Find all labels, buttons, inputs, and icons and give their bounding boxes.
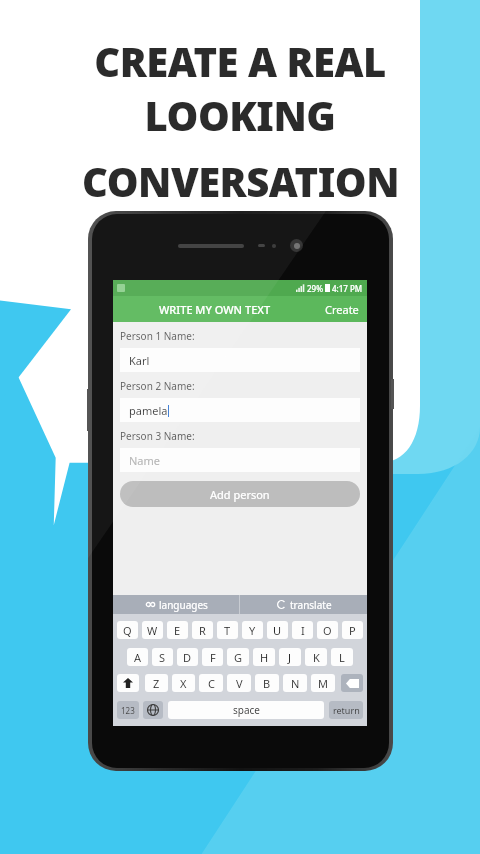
staticText: 123 — [121, 705, 135, 716]
button[interactable]: G — [227, 648, 249, 666]
staticText: I — [301, 623, 305, 638]
button[interactable]: B — [255, 674, 279, 692]
staticText: pamela — [129, 403, 168, 418]
button[interactable]: J — [279, 648, 301, 666]
button[interactable]: K — [305, 648, 327, 666]
staticText: WRITE MY OWN TEXT — [159, 302, 271, 317]
button[interactable]: Z — [145, 674, 168, 692]
button[interactable]: Change language — [143, 701, 163, 719]
staticText: Z — [153, 676, 160, 691]
staticText: Name — [129, 453, 161, 468]
button[interactable]: M — [311, 674, 335, 692]
button[interactable]: translate — [240, 595, 367, 614]
staticText: CREATE A REAL LOOKING — [12, 34, 468, 142]
button[interactable]: Shift — [117, 674, 139, 692]
button[interactable]: space — [168, 701, 324, 719]
button[interactable]: Add person — [120, 481, 360, 507]
button[interactable]: U — [267, 621, 288, 639]
staticText: return — [333, 704, 360, 716]
button[interactable]: Q — [117, 621, 138, 639]
staticText: CONVERSATION — [82, 154, 399, 208]
button[interactable]: Create — [317, 302, 367, 317]
button[interactable]: X — [172, 674, 195, 692]
staticText: K — [313, 650, 320, 665]
staticText: 29% — [307, 283, 323, 294]
button[interactable]: Name — [120, 448, 360, 472]
staticText: S — [159, 650, 166, 665]
button[interactable]: P — [342, 621, 363, 639]
staticText: F — [210, 650, 216, 665]
staticText: P — [349, 623, 356, 638]
button[interactable]: F — [202, 648, 223, 666]
staticText: 4:17 PM — [332, 283, 363, 294]
button[interactable]: S — [152, 648, 173, 666]
staticText: M — [318, 676, 328, 691]
staticText: T — [224, 623, 231, 638]
button[interactable]: D — [177, 648, 198, 666]
button[interactable]: C — [199, 674, 223, 692]
staticText: B — [263, 676, 271, 691]
staticText: W — [147, 623, 158, 638]
staticText: L — [339, 650, 345, 665]
staticText: U — [273, 623, 282, 638]
button[interactable]: L — [331, 648, 353, 666]
staticText: Person 2 Name: — [120, 379, 195, 393]
staticText: Y — [249, 623, 256, 638]
staticText: Person 1 Name: — [120, 329, 195, 343]
button[interactable]: return — [329, 701, 363, 719]
button[interactable]: W — [142, 621, 163, 639]
staticText: H — [260, 650, 269, 665]
staticText: translate — [290, 598, 332, 612]
button[interactable]: N — [283, 674, 307, 692]
staticText: E — [174, 623, 181, 638]
staticText: J — [288, 650, 292, 665]
staticText: N — [291, 676, 300, 691]
button[interactable]: T — [217, 621, 238, 639]
staticText: O — [323, 623, 332, 638]
staticText: Karl — [129, 353, 150, 368]
button[interactable]: languages — [113, 595, 239, 614]
staticText: space — [233, 703, 260, 717]
button[interactable]: pamela — [120, 398, 360, 422]
button[interactable]: Karl — [120, 348, 360, 372]
staticText: Add person — [210, 487, 270, 502]
staticText: Person 3 Name: — [120, 429, 195, 443]
staticText: G — [234, 650, 243, 665]
button[interactable]: Backspace — [341, 674, 363, 692]
button[interactable]: R — [192, 621, 213, 639]
button[interactable]: O — [317, 621, 338, 639]
button[interactable]: E — [167, 621, 188, 639]
staticText: D — [183, 650, 192, 665]
staticText: R — [199, 623, 206, 638]
staticText: languages — [159, 598, 208, 612]
button[interactable]: Y — [242, 621, 263, 639]
staticText: A — [134, 650, 142, 665]
staticText: Q — [123, 623, 132, 638]
button[interactable]: H — [253, 648, 275, 666]
staticText: Create — [325, 302, 359, 317]
button[interactable]: 123 — [117, 701, 139, 719]
button[interactable]: A — [127, 648, 148, 666]
staticText: X — [180, 676, 187, 691]
button[interactable]: I — [292, 621, 313, 639]
staticText: V — [236, 676, 243, 691]
button[interactable]: V — [227, 674, 251, 692]
staticText: C — [208, 676, 215, 691]
